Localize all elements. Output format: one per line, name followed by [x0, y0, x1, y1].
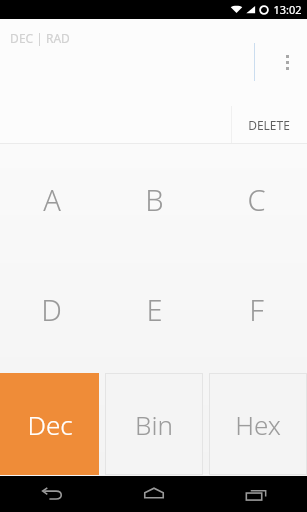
button[interactable]: More options [275, 41, 299, 83]
staticText: 13:02 [273, 2, 302, 17]
staticText: Dec [27, 407, 73, 442]
button[interactable]: Hex [209, 373, 307, 475]
button[interactable]: D [0, 254, 103, 364]
button[interactable]: Bin [105, 373, 203, 475]
button[interactable]: F [205, 254, 307, 364]
button[interactable]: Back [0, 476, 103, 512]
staticText: F [249, 290, 264, 329]
staticText: DELETE [248, 117, 290, 133]
staticText: Bin [135, 407, 173, 442]
button[interactable]: C [205, 144, 307, 254]
staticText: A [43, 180, 61, 219]
button[interactable]: E [103, 254, 205, 364]
button[interactable]: DELETE [231, 106, 307, 143]
staticText: B [145, 180, 164, 219]
button[interactable]: A [0, 144, 103, 254]
staticText: Hex [235, 407, 281, 442]
button[interactable]: Recent apps [205, 476, 307, 512]
staticText: E [146, 290, 163, 329]
staticText: C [247, 180, 266, 219]
staticText: D [41, 290, 62, 329]
staticText: DEC | RAD [10, 30, 70, 46]
button[interactable]: B [103, 144, 205, 254]
button[interactable]: Dec [0, 373, 99, 475]
button[interactable]: Home [103, 476, 205, 512]
